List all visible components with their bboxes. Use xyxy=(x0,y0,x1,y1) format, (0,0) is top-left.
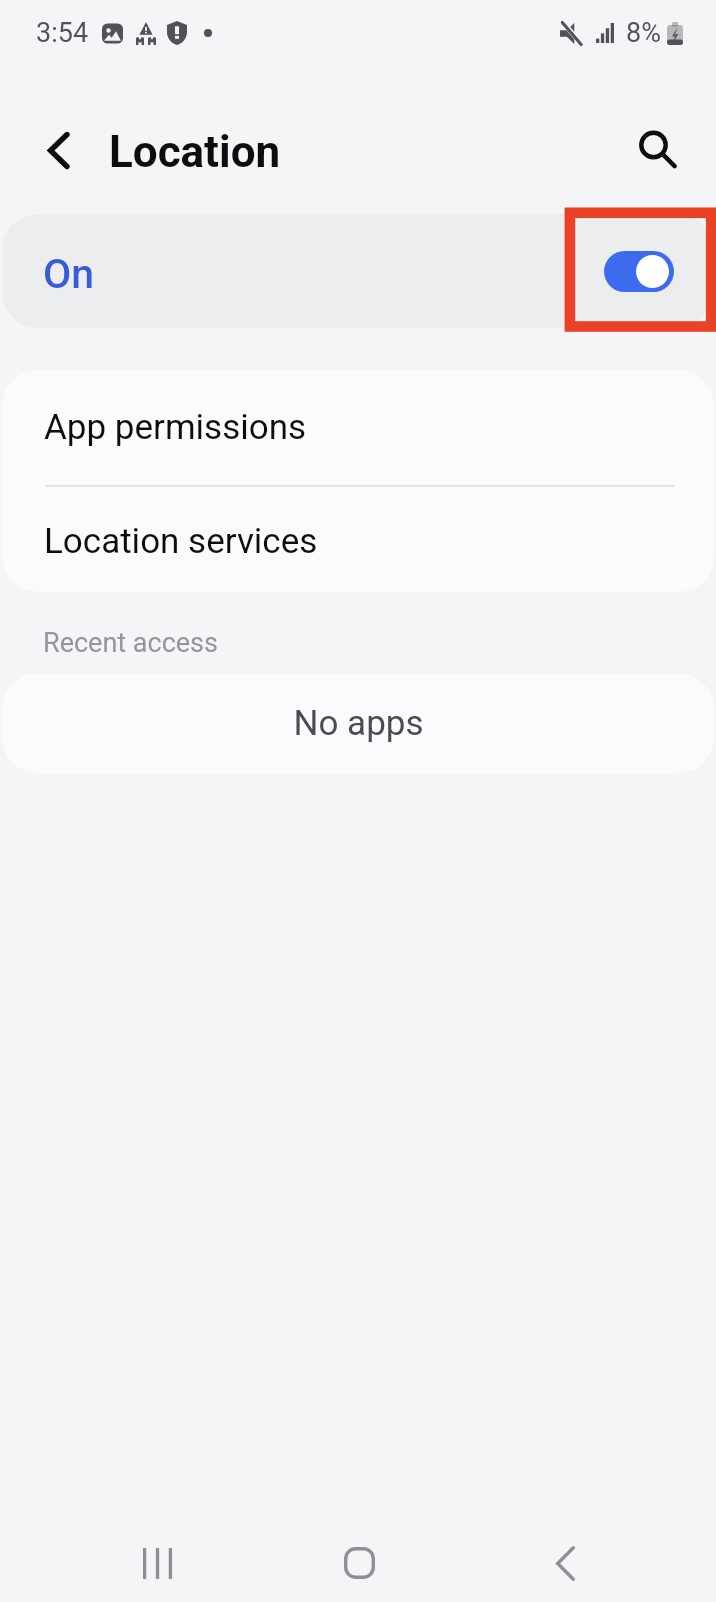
staticText: 3:54 xyxy=(36,17,89,49)
button[interactable]: Search xyxy=(629,126,677,174)
staticText: App permissions xyxy=(44,407,307,448)
button[interactable]: On xyxy=(2,214,714,328)
button[interactable]: Location on/off xyxy=(604,251,674,292)
button[interactable]: Recent apps xyxy=(113,1524,201,1602)
staticText: Location services xyxy=(44,521,318,562)
button[interactable]: App permissions xyxy=(2,370,714,485)
button[interactable]: Location services xyxy=(2,490,714,592)
button[interactable]: Back xyxy=(521,1524,609,1602)
staticText: On xyxy=(43,250,95,298)
button[interactable]: Navigate up xyxy=(34,126,82,174)
staticText: Location xyxy=(109,126,281,178)
staticText: 8% xyxy=(626,17,661,49)
button[interactable]: No apps xyxy=(2,673,714,773)
staticText: No apps xyxy=(293,703,424,744)
staticText: Recent access xyxy=(43,627,218,659)
button[interactable]: Home xyxy=(315,1524,403,1602)
